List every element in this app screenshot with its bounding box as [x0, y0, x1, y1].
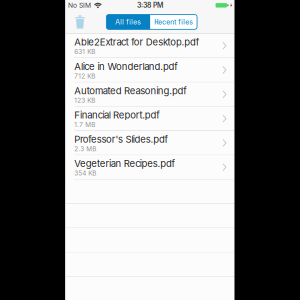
staticText: All files: [115, 18, 141, 26]
staticText: Automated Reasoning.pdf: [74, 85, 187, 96]
button[interactable]: Alice in Wonderland.pdf: [65, 58, 234, 82]
button[interactable]: Recent files: [150, 14, 197, 29]
staticText: Alice in Wonderland.pdf: [74, 61, 178, 72]
staticText: 712 KB: [74, 72, 95, 80]
staticText: 631 KB: [74, 48, 95, 56]
staticText: Financial Report.pdf: [74, 109, 160, 121]
button[interactable]: Vegeterian Recipes.pdf: [65, 155, 234, 180]
staticText: 1.7 MB: [74, 121, 95, 128]
staticText: Vegeterian Recipes.pdf: [74, 158, 176, 169]
button[interactable]: Automated Reasoning.pdf: [65, 82, 234, 107]
button[interactable]: Financial Report.pdf: [65, 107, 234, 131]
staticText: 3:38 PM: [137, 1, 163, 9]
button[interactable]: Professor's Slides.pdf: [65, 131, 234, 155]
staticText: Professor's Slides.pdf: [74, 134, 169, 145]
staticText: 354 KB: [74, 169, 96, 177]
staticText: Able2Extract for Desktop.pdf: [74, 36, 200, 48]
staticText: No SIM: [68, 1, 91, 9]
button[interactable]: Delete: [70, 11, 90, 33]
button[interactable]: Able2Extract for Desktop.pdf: [65, 34, 234, 58]
staticText: 123 KB: [74, 96, 95, 104]
staticText: 2.3 MB: [74, 145, 96, 153]
button[interactable]: All files: [106, 14, 150, 29]
staticText: Recent files: [154, 18, 193, 26]
